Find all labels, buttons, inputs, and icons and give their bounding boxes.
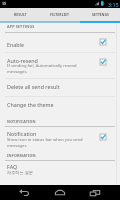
staticText: Change the theme xyxy=(7,101,54,108)
button[interactable]: RESULT xyxy=(0,8,40,21)
staticText: RESULT xyxy=(14,12,27,17)
staticText: Auto-resend xyxy=(7,57,38,64)
staticText: Enable xyxy=(7,41,24,48)
staticText: If sending fail, Automatically resend me… xyxy=(7,63,77,75)
staticText: Delete all send result xyxy=(7,83,60,90)
button[interactable]: Back xyxy=(16,185,32,200)
staticText: 3:15 xyxy=(108,1,119,8)
staticText: APP SETTINGS xyxy=(7,24,35,29)
button[interactable]: Toggle xyxy=(100,39,106,45)
staticText: NOTIFICATION xyxy=(7,119,36,124)
staticText: 자주하는 질문 xyxy=(7,170,33,176)
staticText: FILTERLIST xyxy=(50,12,70,17)
staticText: Show icon in status bar when you send me… xyxy=(7,137,83,149)
staticText: FAQ xyxy=(7,163,18,170)
button[interactable]: SETTINGS xyxy=(80,8,120,21)
button[interactable]: Toggle xyxy=(100,59,106,65)
staticText: Notification xyxy=(7,130,37,137)
button[interactable]: FILTERLIST xyxy=(40,8,80,21)
button[interactable]: Toggle xyxy=(100,134,106,140)
staticText: INFORMATION xyxy=(7,153,36,158)
staticText: SETTINGS xyxy=(92,12,109,17)
button[interactable]: Recent apps xyxy=(87,185,103,200)
button[interactable]: Home xyxy=(52,185,68,200)
